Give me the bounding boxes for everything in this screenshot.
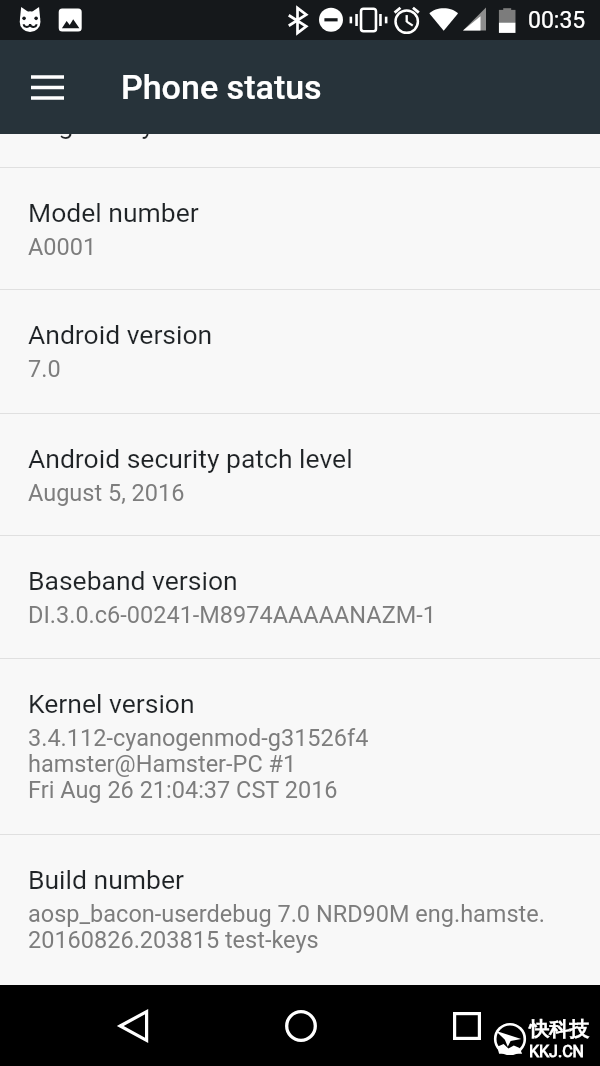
button[interactable]: Back xyxy=(105,997,162,1054)
staticText: Android version xyxy=(28,319,213,350)
staticText: KKJ.CN xyxy=(529,1042,584,1061)
staticText: August 5, 2016 xyxy=(28,479,185,507)
staticText: 7.0 xyxy=(28,355,61,383)
button[interactable]: Open navigation menu xyxy=(18,58,76,116)
staticText: Model number xyxy=(28,197,199,228)
staticText: DI.3.0.c6-00241-M8974AAAAANAZM-1 xyxy=(28,601,436,629)
staticText: aosp_bacon-userdebug 7.0 NRD90M eng.hams… xyxy=(28,900,545,953)
staticText: Regulatory labels xyxy=(28,134,231,140)
button[interactable]: Recent apps xyxy=(438,997,495,1054)
button[interactable]: Android security patch level xyxy=(0,414,600,535)
staticText: Phone status xyxy=(121,67,322,107)
button[interactable]: Baseband version xyxy=(0,536,600,658)
staticText: Build number xyxy=(28,864,184,895)
button[interactable]: Model number xyxy=(0,168,600,289)
button[interactable]: Kernel version xyxy=(0,659,600,834)
staticText: Android security patch level xyxy=(28,443,353,474)
staticText: 00:35 xyxy=(528,7,586,34)
staticText: Kernel version xyxy=(28,688,195,719)
staticText: 快科技 xyxy=(529,1017,589,1042)
staticText: Baseband version xyxy=(28,565,238,596)
button[interactable]: Android version xyxy=(0,290,600,413)
staticText: A0001 xyxy=(28,233,97,261)
staticText: 3.4.112-cyanogenmod-g31526f4 hamster@Ham… xyxy=(28,724,369,803)
button[interactable]: Home xyxy=(272,997,329,1054)
button[interactable]: Build number xyxy=(0,835,600,983)
